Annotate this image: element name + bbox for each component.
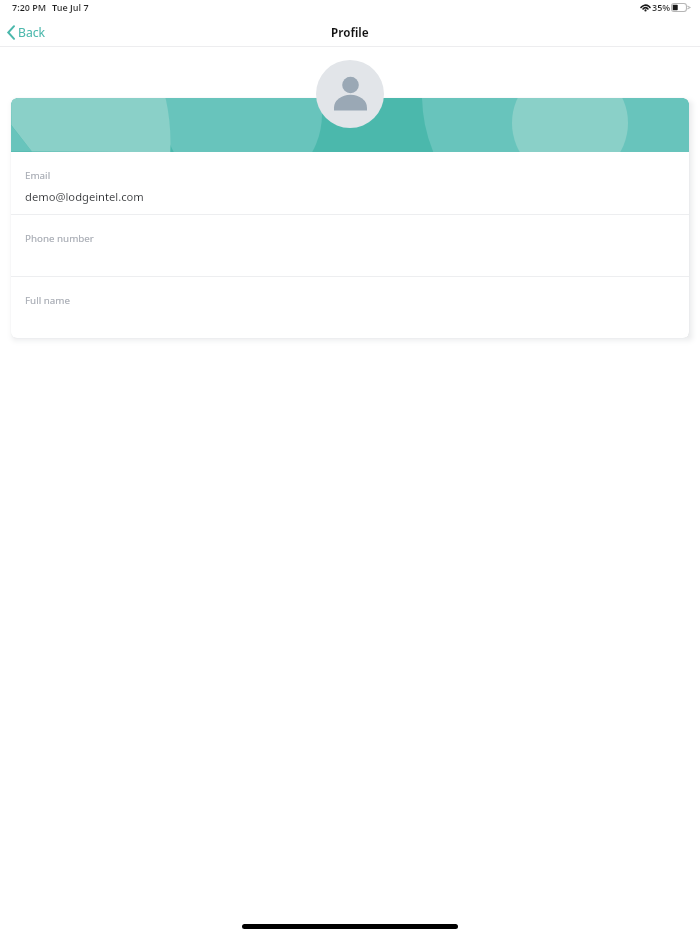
staticText: Email [25,169,51,182]
staticText: Profile [331,25,369,41]
button[interactable]: Back [0,21,58,44]
staticText: Phone number [25,232,94,245]
button[interactable]: Change profile photo [316,60,384,128]
staticText: 35% [652,1,671,13]
button[interactable]: Email [11,152,689,215]
staticText: Tue Jul 7 [52,1,89,13]
button[interactable]: Phone number [11,215,689,277]
staticText: demo@lodgeintel.com [25,189,144,204]
staticText: Back [18,24,46,41]
staticText: 7:20 PM [12,1,47,13]
button[interactable]: Full name [11,277,689,338]
staticText: Full name [25,294,70,307]
